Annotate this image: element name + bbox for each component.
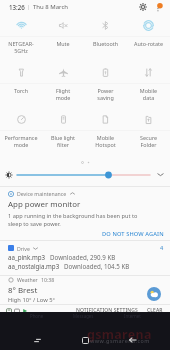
button[interactable]: Torch [0,61,42,108]
button[interactable]: Notifications, 1 new [152,1,164,13]
button[interactable]: Auto-rotate [127,14,170,61]
staticText: Performance mode [0,134,42,148]
staticText: aa_nostalgia.mp3 [8,262,60,270]
staticText: 10:38 [41,276,55,283]
staticText: | [27,3,31,11]
staticText: Internet [124,313,141,319]
staticText: Messages [73,313,94,319]
staticText: Auto-rotate [127,40,170,47]
staticText: Blue light filter [42,134,84,148]
staticText: Torch [0,87,42,94]
button[interactable]: DO NOT SHOW AGAIN [99,229,164,239]
staticText: Drive [17,245,30,252]
button[interactable]: Back [119,326,147,350]
button[interactable]: NOTIFICATION SETTINGS [74,306,140,315]
staticText: Mobile data [127,87,170,101]
button[interactable]: NETGEAR- 5GHz [0,14,42,61]
staticText: Phone [30,313,44,319]
button[interactable]: Mobile Hotspot [84,108,127,155]
staticText: Secure Folder [127,134,170,148]
staticText: CLEAR [147,307,163,314]
button[interactable]: Flight mode [42,61,84,108]
staticText: Weather [17,276,38,283]
button[interactable]: Power saving [84,61,127,108]
staticText: NETGEAR- 5GHz [0,40,42,54]
button[interactable]: Secure Folder [127,108,170,155]
button[interactable]: Bluetooth [84,14,127,61]
button[interactable]: Drive [0,241,170,275]
button[interactable]: Mute [42,14,84,61]
staticText: Power saving [84,87,127,101]
staticText: NOTIFICATION SETTINGS [76,307,138,314]
staticText: Flight mode [42,87,84,101]
staticText: aa_pink.mp3 [8,253,46,261]
button[interactable]: Settings [137,1,149,13]
button[interactable]: Expand brightness settings [155,169,166,180]
staticText: sleep to save power. [8,220,61,228]
button[interactable]: Performance mode [0,108,42,155]
staticText: 13:26 [9,3,25,11]
staticText: 4 [160,244,164,252]
staticText: 8° Brest [8,285,38,296]
staticText: Thu 8 March [33,3,69,11]
staticText: Device maintenance [17,190,67,197]
button[interactable]: CLEAR [145,306,165,315]
staticText: Mobile Hotspot [84,134,127,148]
button[interactable]: Home [71,326,99,350]
button[interactable]: Blue light filter [42,108,84,155]
staticText: Bluetooth [84,40,127,47]
staticText: 1 app running in the background has been… [8,212,138,220]
staticText: DO NOT SHOW AGAIN [102,230,164,238]
staticText: Mute [42,40,84,47]
staticText: Downloaded, 290.9 KB [50,253,116,261]
staticText: App power monitor [8,199,81,210]
staticText: Downloaded, 104.5 KB [64,262,130,270]
staticText: www.gsmarena.com [90,337,150,344]
button[interactable]: Recents [23,326,51,350]
staticText: gsmarena [87,326,152,343]
staticText: High 10° / Low 5° [8,296,56,304]
button[interactable]: Weather [0,276,170,304]
button[interactable]: Device maintenance [0,187,170,240]
button[interactable]: Mobile data [127,61,170,108]
